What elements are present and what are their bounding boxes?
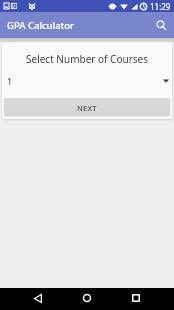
staticText: NEXT: [77, 103, 97, 113]
button[interactable]: Number of courses: [2, 74, 172, 88]
staticText: Select Number of Courses: [2, 52, 172, 66]
button[interactable]: NEXT: [4, 98, 170, 116]
staticText: 1: [7, 75, 13, 87]
button[interactable]: Home: [76, 287, 98, 309]
staticText: 11:29: [150, 1, 171, 12]
button[interactable]: Search: [148, 12, 174, 38]
staticText: GPA Calculator: [7, 19, 75, 32]
button[interactable]: Recent apps: [125, 287, 147, 309]
button[interactable]: Back: [27, 287, 49, 309]
